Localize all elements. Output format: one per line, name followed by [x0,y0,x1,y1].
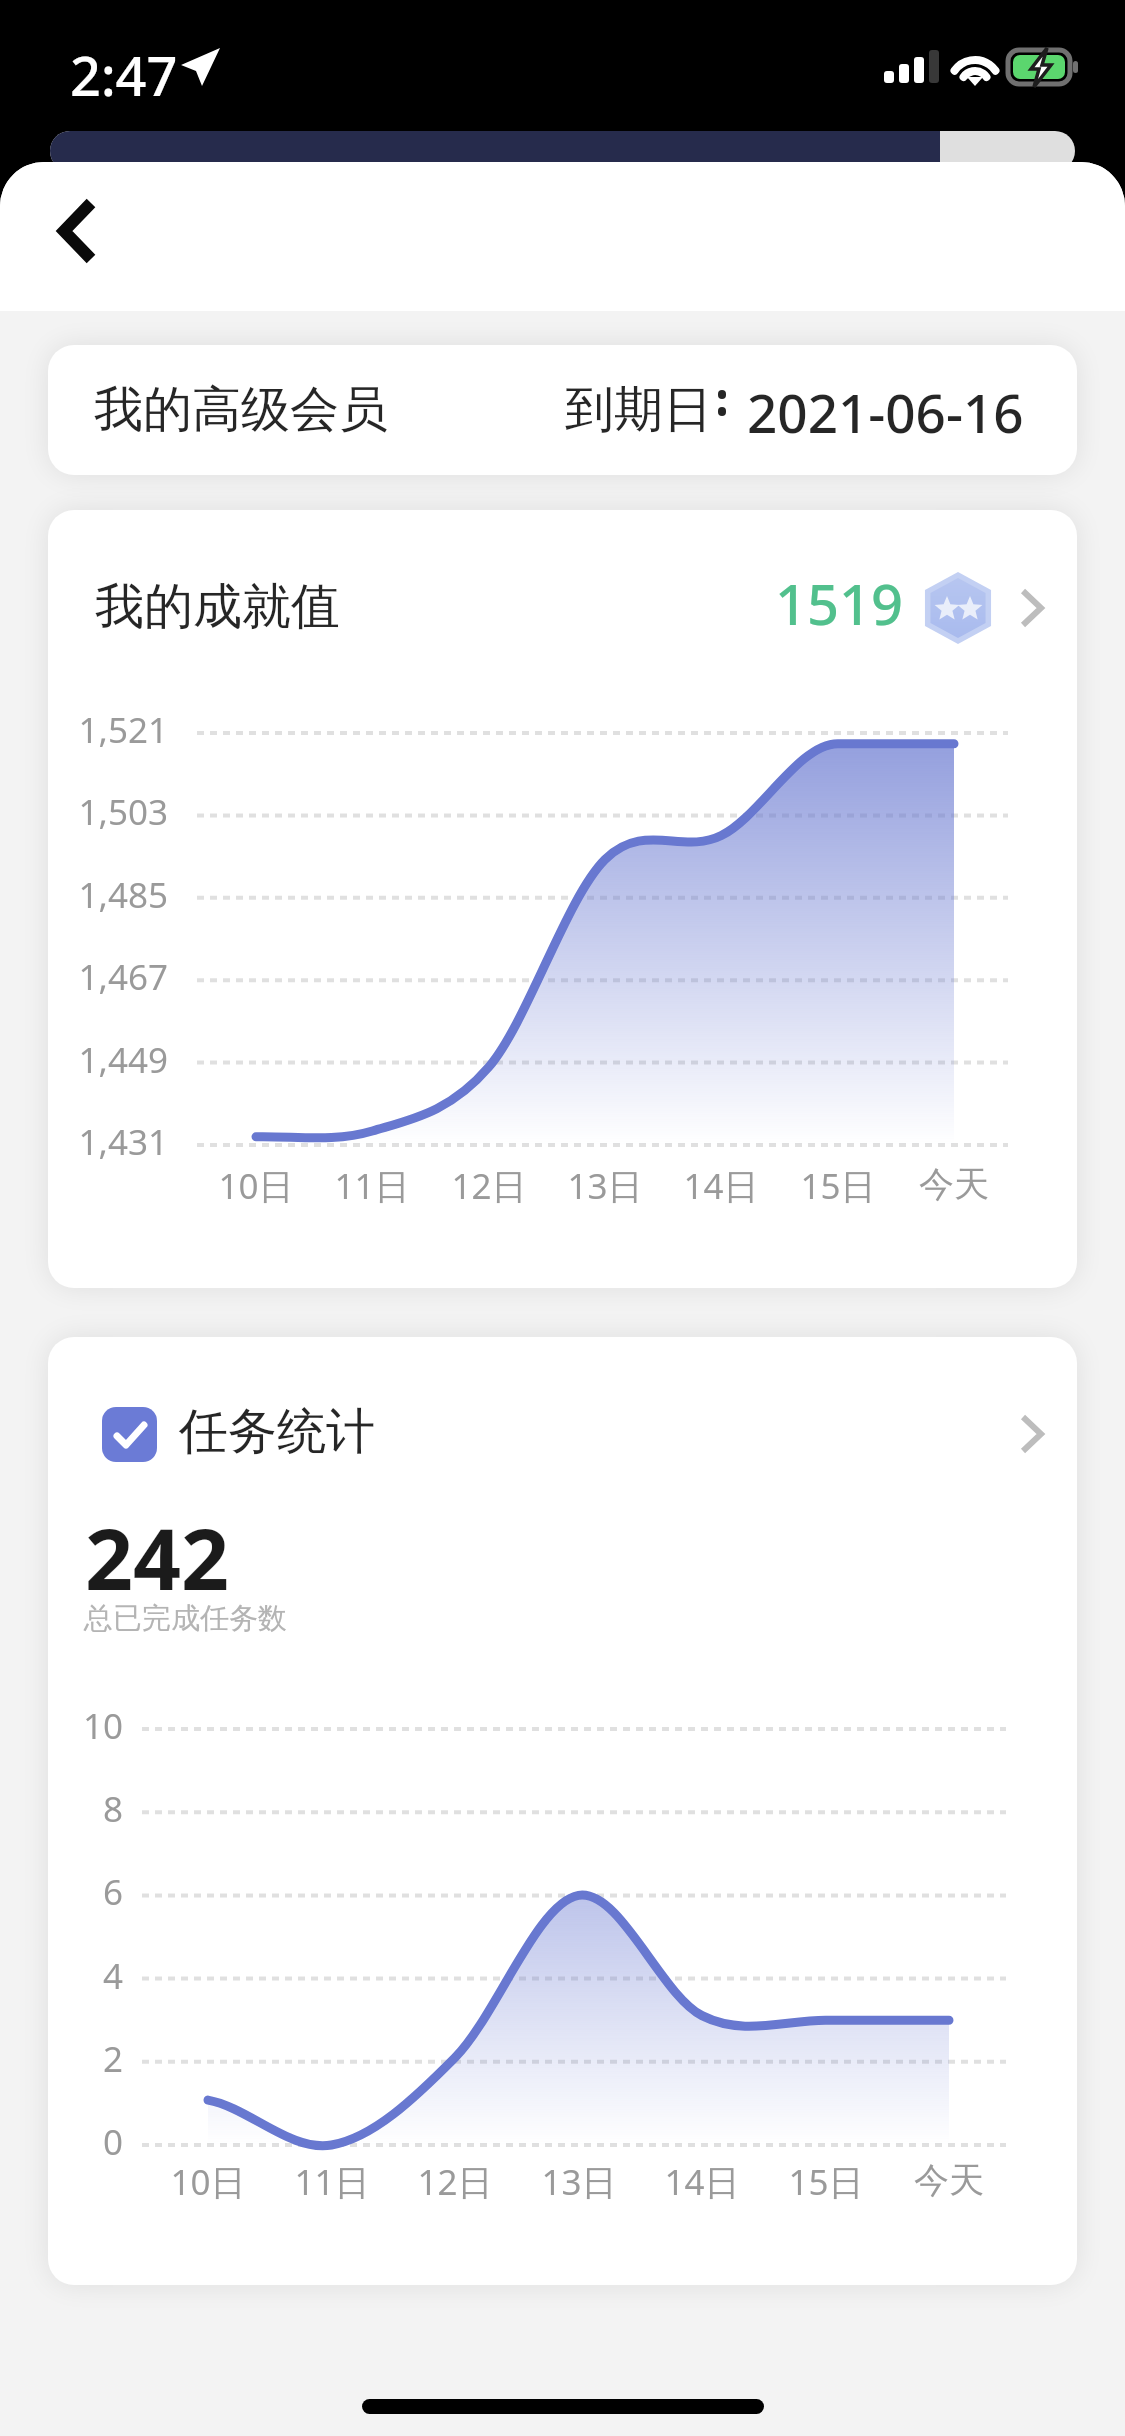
staticText: 今天 [894,1162,1014,1206]
staticText: 2:47 [70,38,178,112]
staticText: 11日 [312,1162,432,1210]
staticText: 15日 [766,2158,886,2206]
button[interactable]: 任务统计 [48,1337,1077,1531]
staticText: 任务统计 [179,1401,375,1463]
staticText: 12日 [429,1162,549,1210]
staticText: 1,503 [48,788,168,836]
staticText: 14日 [642,2158,762,2206]
staticText: 1519 [775,565,904,641]
staticText: 1,485 [48,871,168,919]
staticText: 1,449 [48,1036,168,1084]
staticText: 总已完成任务数 [84,1600,287,1637]
staticText: 我的高级会员 [94,379,388,441]
staticText: 2 [48,2035,123,2083]
staticText: 242 [85,1500,230,1614]
staticText: 10日 [148,2158,268,2206]
staticText: 我的成就值 [95,576,340,638]
staticText: 1,431 [48,1118,168,1166]
staticText: 8 [48,1785,123,1833]
staticText: 1,467 [48,953,168,1001]
staticText: 13日 [545,1162,665,1210]
staticText: 13日 [519,2158,639,2206]
button[interactable]: 我的成就值 [48,510,1077,700]
staticText: 10日 [196,1162,316,1210]
staticText: 0 [48,2118,123,2166]
staticText: 12日 [395,2158,515,2206]
staticText: 2021-06-16 [747,376,1024,448]
button[interactable]: Back [28,182,128,282]
staticText: 今天 [889,2158,1009,2202]
staticText: 11日 [272,2158,392,2206]
staticText: 14日 [661,1162,781,1210]
button[interactable]: 我的高级会员 [48,345,1077,475]
staticText: 1,521 [48,706,168,754]
staticText: 6 [48,1868,123,1916]
staticText: 4 [48,1952,123,2000]
staticText: 到期日 [565,379,712,441]
staticText: 15日 [778,1162,898,1210]
staticText: 10 [48,1702,123,1750]
